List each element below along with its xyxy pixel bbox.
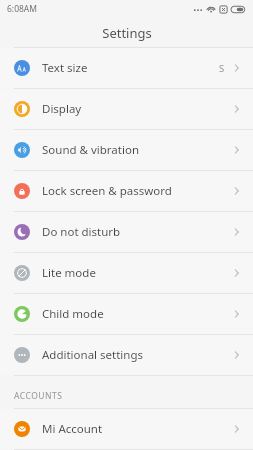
staticText: Lite mode: [42, 265, 96, 281]
staticText: Text size: [42, 60, 88, 76]
button[interactable]: Mi Account: [0, 409, 253, 449]
staticText: Lock screen & password: [42, 183, 172, 199]
button[interactable]: Do not disturb: [0, 212, 253, 252]
button[interactable]: Child mode: [0, 294, 253, 334]
staticText: 6:08AM: [7, 3, 38, 15]
button[interactable]: Text size: [0, 48, 253, 88]
staticText: Additional settings: [42, 347, 144, 363]
staticText: ACCOUNTS: [14, 390, 63, 402]
staticText: Display: [42, 101, 82, 117]
button[interactable]: Lite mode: [0, 253, 253, 293]
staticText: Mi Account: [42, 421, 103, 437]
staticText: Child mode: [42, 306, 104, 322]
staticText: Settings: [102, 24, 152, 42]
staticText: Sound & vibration: [42, 142, 139, 158]
button[interactable]: Display: [0, 89, 253, 129]
staticText: Do not disturb: [42, 224, 121, 240]
staticText: S: [219, 62, 225, 75]
button[interactable]: Additional settings: [0, 335, 253, 375]
button[interactable]: Lock screen & password: [0, 171, 253, 211]
button[interactable]: Sound & vibration: [0, 130, 253, 170]
